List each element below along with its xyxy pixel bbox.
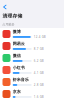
staticText: 清理存储 — [2, 13, 22, 19]
button[interactable]: 虾米音乐 — [0, 76, 64, 88]
staticText: 微博 — [13, 29, 21, 34]
staticText: 占用最多 — [2, 22, 14, 26]
staticText: 1.6 GB — [34, 95, 44, 99]
staticText: 4.1 GB — [34, 71, 44, 75]
staticText: 小红书 — [13, 65, 25, 70]
staticText: 虾米音乐 — [13, 77, 29, 82]
button[interactable]: 京东 — [0, 88, 64, 100]
staticText: 2.8 GB — [34, 83, 44, 87]
staticText: 6.2 GB — [34, 59, 44, 63]
button[interactable]: 微信 — [0, 52, 64, 64]
button[interactable]: 微博 — [0, 28, 64, 40]
button[interactable]: 网易云 — [0, 40, 64, 52]
staticText: 微信 — [13, 53, 21, 58]
button[interactable]: 小红书 — [0, 64, 64, 76]
staticText: 12.4 GB — [34, 35, 46, 39]
button[interactable]: Back — [0, 0, 11, 11]
staticText: 网易云 — [13, 41, 25, 46]
staticText: 8.7 GB — [34, 47, 44, 51]
staticText: 京东 — [13, 89, 21, 94]
